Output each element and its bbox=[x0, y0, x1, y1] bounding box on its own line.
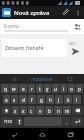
button[interactable]: Komu bbox=[0, 19, 84, 34]
staticText: s bbox=[13, 97, 16, 103]
staticText: g bbox=[40, 97, 43, 103]
button[interactable]: q bbox=[1, 84, 9, 93]
staticText: o bbox=[70, 86, 73, 92]
button[interactable]: o bbox=[68, 84, 75, 93]
button[interactable]: Domů bbox=[28, 128, 56, 140]
staticText: Zdravím čtenáře mobilenet.cz bbox=[5, 45, 64, 52]
staticText: r bbox=[31, 86, 33, 92]
staticText: b bbox=[48, 108, 51, 114]
staticText: . bbox=[66, 119, 68, 125]
button[interactable]: u bbox=[52, 84, 59, 93]
button[interactable]: h bbox=[46, 95, 54, 104]
button[interactable]: y bbox=[44, 84, 51, 93]
button[interactable]: x bbox=[20, 106, 27, 115]
button[interactable]: Další možnosti bbox=[73, 8, 82, 17]
button[interactable]: . bbox=[63, 117, 70, 126]
button[interactable]: Odeslat bbox=[69, 41, 82, 56]
staticText: x bbox=[22, 108, 25, 114]
button[interactable]: d bbox=[19, 95, 27, 104]
button[interactable]: l bbox=[73, 95, 81, 104]
button[interactable]: i bbox=[60, 84, 67, 93]
staticText: p bbox=[78, 86, 81, 92]
staticText: t bbox=[39, 86, 41, 92]
button[interactable]: Shift bbox=[1, 106, 11, 115]
staticText: cz bbox=[12, 76, 17, 82]
button[interactable]: t bbox=[36, 84, 43, 93]
button[interactable]: Zpět bbox=[0, 128, 28, 140]
button[interactable]: Přidat kontakt bbox=[71, 21, 82, 32]
staticText: k bbox=[67, 97, 70, 103]
button[interactable]: ?123 bbox=[1, 117, 14, 126]
staticText: e bbox=[22, 86, 25, 92]
staticText: f bbox=[31, 97, 33, 103]
staticText: d bbox=[22, 97, 25, 103]
staticText: u bbox=[54, 86, 57, 92]
button[interactable]: Hlasový vstup bbox=[15, 117, 23, 126]
button[interactable]: p bbox=[76, 84, 83, 93]
staticText: w bbox=[12, 86, 16, 92]
staticText: mobilenet bbox=[31, 76, 53, 82]
button[interactable]: g bbox=[37, 95, 45, 104]
staticText: a bbox=[5, 97, 8, 103]
button[interactable]: cz bbox=[0, 74, 28, 83]
staticText: v bbox=[39, 108, 42, 114]
staticText: j bbox=[58, 97, 60, 103]
staticText: Komu bbox=[4, 22, 20, 29]
button[interactable]: j bbox=[55, 95, 63, 104]
staticText: CZ bbox=[67, 76, 73, 82]
button[interactable]: Přehled bbox=[56, 128, 84, 140]
staticText: m bbox=[65, 108, 70, 114]
button[interactable]: b bbox=[45, 106, 53, 115]
staticText: 40/1 bbox=[69, 41, 82, 46]
staticText: i bbox=[63, 86, 65, 92]
button[interactable]: s bbox=[11, 95, 18, 104]
staticText: y bbox=[46, 86, 49, 92]
staticText: q bbox=[4, 86, 7, 92]
button[interactable]: c bbox=[28, 106, 35, 115]
button[interactable]: Enter bbox=[71, 117, 83, 126]
button[interactable]: v bbox=[36, 106, 44, 115]
button[interactable]: k bbox=[64, 95, 72, 104]
button[interactable]: m bbox=[63, 106, 71, 115]
button[interactable]: Zdravím čtenáře mobilenet.cz bbox=[2, 39, 67, 57]
button[interactable]: mobilenet bbox=[28, 74, 56, 83]
staticText: ?123 bbox=[4, 119, 12, 124]
button[interactable]: a bbox=[3, 95, 10, 104]
staticText: l bbox=[76, 97, 78, 103]
button[interactable]: n bbox=[54, 106, 62, 115]
staticText: h bbox=[49, 97, 52, 103]
button[interactable]: z bbox=[12, 106, 19, 115]
button[interactable]: Přílohy bbox=[61, 7, 72, 18]
button[interactable]: r bbox=[28, 84, 35, 93]
button[interactable]: w bbox=[10, 84, 18, 93]
staticText: z bbox=[14, 108, 17, 114]
button[interactable]: e bbox=[19, 84, 27, 93]
button[interactable]: Zpět bbox=[2, 8, 11, 17]
button[interactable]: f bbox=[28, 95, 36, 104]
staticText: c bbox=[30, 108, 33, 114]
staticText: n bbox=[57, 108, 60, 114]
button[interactable]: CZ bbox=[56, 74, 84, 83]
button[interactable]: Smazat bbox=[72, 106, 83, 115]
staticText: Nová zpráva bbox=[14, 9, 50, 17]
